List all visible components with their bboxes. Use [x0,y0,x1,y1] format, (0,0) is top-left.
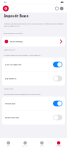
button[interactable]: Alertas [33,138,50,150]
staticText: NOTIFICAÇÕES [3,88,13,90]
button[interactable]: Novos grupos [2,96,65,110]
staticText: Início [7,145,10,147]
staticText: Grupos de Busca [3,14,28,18]
button[interactable]: Ocultar já vistos [2,71,65,85]
button[interactable]: Resumo semanal [2,110,65,124]
button[interactable]: Recomendados [2,36,65,46]
button[interactable]: Home [3,5,9,11]
staticText: Resumo semanal [5,116,19,119]
staticText: Escolha como os grupos são mostrados nas… [3,54,40,57]
button[interactable]: Mostrar sugestões [2,57,65,71]
button[interactable]: Buscar [17,138,34,150]
staticText: Ocultar já vistos [5,77,17,80]
staticText: Configure quais grupos de busca serão us… [3,23,63,27]
staticText: Recomendados [10,40,23,43]
button[interactable]: Account [59,6,64,11]
staticText: 9:41 [3,1,6,3]
staticText: Alertas [39,145,44,147]
staticText: EXIBIÇÃO NA LISTA [3,49,15,51]
staticText: Perfil [57,145,61,147]
button[interactable]: Perfil [50,138,67,150]
staticText: Mostrar sugestões [5,63,22,66]
staticText: Novos grupos [5,102,16,105]
staticText: Receba avisos sobre novidades nos seus g… [3,93,40,96]
button[interactable]: Início [0,138,17,150]
button[interactable]: Search [55,6,59,11]
staticText: GRUPOS DE BUSCA PADRÃO [3,32,22,34]
